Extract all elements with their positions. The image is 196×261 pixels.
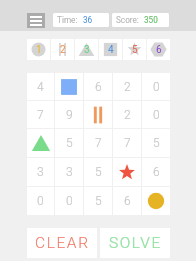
button[interactable] bbox=[113, 158, 141, 186]
button[interactable] bbox=[142, 187, 170, 215]
staticText: 6 bbox=[156, 44, 162, 56]
staticText: 7 bbox=[124, 136, 131, 150]
button[interactable]: 3 bbox=[75, 39, 98, 60]
button[interactable] bbox=[55, 73, 83, 100]
button[interactable]: 3 bbox=[27, 158, 54, 186]
staticText: 350 bbox=[144, 15, 158, 25]
button[interactable]: 2 bbox=[113, 101, 141, 128]
button[interactable]: 9 bbox=[55, 101, 83, 128]
staticText: 5 bbox=[153, 136, 160, 150]
button[interactable]: 7 bbox=[27, 101, 54, 128]
button[interactable]: SOLVE bbox=[100, 228, 170, 258]
button[interactable]: 5 bbox=[142, 129, 170, 157]
staticText: 0 bbox=[37, 194, 44, 208]
button[interactable]: 6 bbox=[113, 187, 141, 215]
button[interactable]: 0 bbox=[142, 101, 170, 128]
button[interactable]: 2 bbox=[51, 39, 74, 60]
button[interactable]: 0 bbox=[27, 187, 54, 215]
staticText: 7 bbox=[37, 108, 44, 122]
button[interactable]: Score: bbox=[112, 13, 169, 27]
staticText: 5 bbox=[95, 194, 102, 208]
button[interactable]: 5 bbox=[84, 187, 112, 215]
button[interactable]: 5 bbox=[55, 129, 83, 157]
staticText: 6 bbox=[95, 80, 102, 94]
staticText: 36 bbox=[83, 15, 93, 25]
button[interactable]: Time: bbox=[53, 13, 109, 27]
staticText: 0 bbox=[153, 108, 160, 122]
staticText: 6 bbox=[153, 165, 160, 179]
staticText: 2 bbox=[124, 80, 131, 94]
button[interactable]: 4 bbox=[27, 73, 54, 100]
staticText: 3 bbox=[37, 165, 44, 179]
button[interactable]: 4 bbox=[99, 39, 122, 60]
staticText: Time: bbox=[57, 15, 78, 25]
button[interactable]: 6 bbox=[142, 158, 170, 186]
staticText: SOLVE bbox=[109, 234, 162, 252]
staticText: 1 bbox=[36, 44, 42, 56]
staticText: 4 bbox=[37, 80, 44, 94]
staticText: 9 bbox=[66, 108, 73, 122]
staticText: 0 bbox=[66, 194, 73, 208]
button[interactable]: 6 bbox=[147, 39, 170, 60]
button[interactable]: Menu bbox=[27, 13, 45, 28]
button[interactable]: 0 bbox=[55, 187, 83, 215]
staticText: 3 bbox=[84, 44, 90, 56]
button[interactable]: 3 bbox=[55, 158, 83, 186]
staticText: 5 bbox=[132, 44, 138, 56]
staticText: Score: bbox=[116, 15, 139, 25]
button[interactable] bbox=[84, 101, 112, 128]
staticText: 2 bbox=[60, 44, 66, 56]
button[interactable]: 6 bbox=[84, 73, 112, 100]
button[interactable]: 5 bbox=[84, 158, 112, 186]
button[interactable]: 2 bbox=[113, 73, 141, 100]
button[interactable]: 7 bbox=[84, 129, 112, 157]
button[interactable]: 7 bbox=[113, 129, 141, 157]
staticText: 5 bbox=[95, 165, 102, 179]
button[interactable]: 1 bbox=[27, 39, 50, 60]
button[interactable]: 0 bbox=[142, 73, 170, 100]
staticText: 6 bbox=[124, 194, 131, 208]
button[interactable]: 5 bbox=[123, 39, 146, 60]
staticText: 4 bbox=[108, 44, 114, 56]
staticText: 3 bbox=[66, 165, 73, 179]
button[interactable] bbox=[27, 129, 54, 157]
staticText: CLEAR bbox=[35, 234, 90, 252]
staticText: 5 bbox=[66, 136, 73, 150]
staticText: 0 bbox=[153, 80, 160, 94]
button[interactable]: CLEAR bbox=[27, 228, 97, 258]
staticText: 7 bbox=[95, 136, 102, 150]
staticText: 2 bbox=[124, 108, 131, 122]
